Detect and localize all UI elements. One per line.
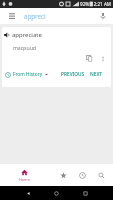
button[interactable]: Home [0,164,48,186]
button[interactable]: Pronounce [2,30,12,39]
staticText: NEXT [90,71,103,78]
button[interactable]: Navigation menu [0,8,24,24]
staticText: PREVIOUS [61,71,85,78]
staticText: 92% [80,1,90,7]
staticText: 12:21 AM [91,1,112,7]
button[interactable]: Copy [83,52,96,65]
button[interactable]: Favorites [53,164,73,186]
button[interactable]: Home [42,186,71,200]
button[interactable]: NEXT [87,71,111,78]
button[interactable]: Search [92,164,111,186]
button[interactable]: History [73,164,92,186]
staticText: appreci [24,12,93,20]
button[interactable]: Voice search [93,8,113,24]
button[interactable]: Recents [71,186,100,200]
button[interactable]: PREVIOUS [59,71,87,78]
staticText: Home [19,177,30,182]
staticText: From History [13,71,43,78]
staticText: appreciate [12,31,42,39]
button[interactable]: Back [14,186,42,200]
button[interactable]: More options [96,52,109,65]
button[interactable]: From History [2,71,50,78]
staticText: maqsuud [13,44,37,51]
